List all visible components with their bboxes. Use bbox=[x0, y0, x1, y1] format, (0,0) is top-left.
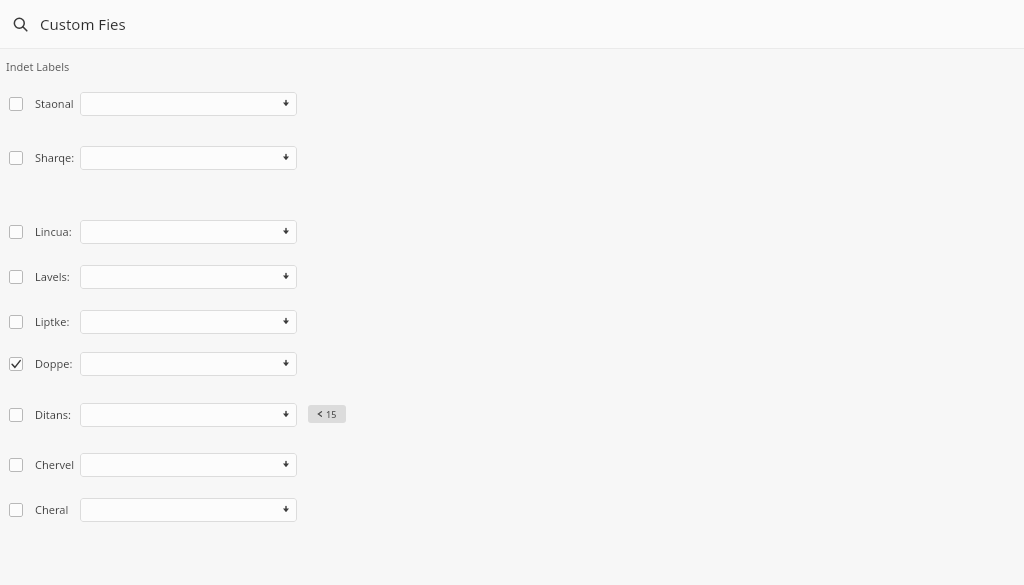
button[interactable]: Cheral bbox=[35, 502, 69, 517]
staticText: Indet Labels bbox=[6, 59, 70, 74]
button[interactable]: Cheral dropdown bbox=[80, 498, 297, 522]
staticText: Cheral bbox=[35, 502, 69, 517]
button[interactable]: Ditans: checkbox bbox=[8, 407, 24, 423]
staticText: Lavels: bbox=[35, 269, 70, 284]
button[interactable]: Doppe: dropdown bbox=[80, 352, 297, 376]
button[interactable]: Staonal checkbox bbox=[8, 96, 24, 112]
button[interactable]: 15 bbox=[308, 405, 346, 423]
staticText: Custom Fies bbox=[40, 14, 126, 34]
button[interactable]: Search bbox=[8, 12, 126, 36]
button[interactable]: Ditans: dropdown bbox=[80, 403, 297, 427]
other: Search bbox=[8, 12, 32, 36]
button[interactable]: Sharqe: checkbox bbox=[8, 150, 24, 166]
staticText: Lincua: bbox=[35, 224, 72, 239]
staticText: Sharqe: bbox=[35, 150, 75, 165]
button[interactable]: Lavels: dropdown bbox=[80, 265, 297, 289]
button[interactable]: Lincua: checkbox bbox=[8, 224, 24, 240]
button[interactable]: Doppe: checkbox bbox=[8, 356, 24, 372]
staticText: Liptke: bbox=[35, 314, 70, 329]
button[interactable]: Staonal bbox=[35, 96, 74, 111]
button[interactable]: Cheral checkbox bbox=[8, 502, 24, 518]
button[interactable]: Lavels: bbox=[35, 269, 70, 284]
button[interactable]: Staonal dropdown bbox=[80, 92, 297, 116]
button[interactable]: Doppe: bbox=[35, 356, 73, 371]
button[interactable]: Lincua: dropdown bbox=[80, 220, 297, 244]
button[interactable]: Chervel bbox=[35, 457, 75, 472]
button[interactable]: Liptke: checkbox bbox=[8, 314, 24, 330]
button[interactable]: Chervel dropdown bbox=[80, 453, 297, 477]
button[interactable]: Sharqe: dropdown bbox=[80, 146, 297, 170]
button[interactable]: Liptke: dropdown bbox=[80, 310, 297, 334]
staticText: Doppe: bbox=[35, 356, 73, 371]
staticText: Staonal bbox=[35, 96, 74, 111]
button[interactable]: Liptke: bbox=[35, 314, 70, 329]
staticText: Chervel bbox=[35, 457, 75, 472]
staticText: 15 bbox=[326, 408, 337, 420]
button[interactable]: Sharqe: bbox=[35, 150, 75, 165]
button[interactable]: Ditans: bbox=[35, 407, 72, 422]
staticText: Ditans: bbox=[35, 407, 72, 422]
button[interactable]: Lincua: bbox=[35, 224, 72, 239]
button[interactable]: Chervel checkbox bbox=[8, 457, 24, 473]
button[interactable]: Lavels: checkbox bbox=[8, 269, 24, 285]
